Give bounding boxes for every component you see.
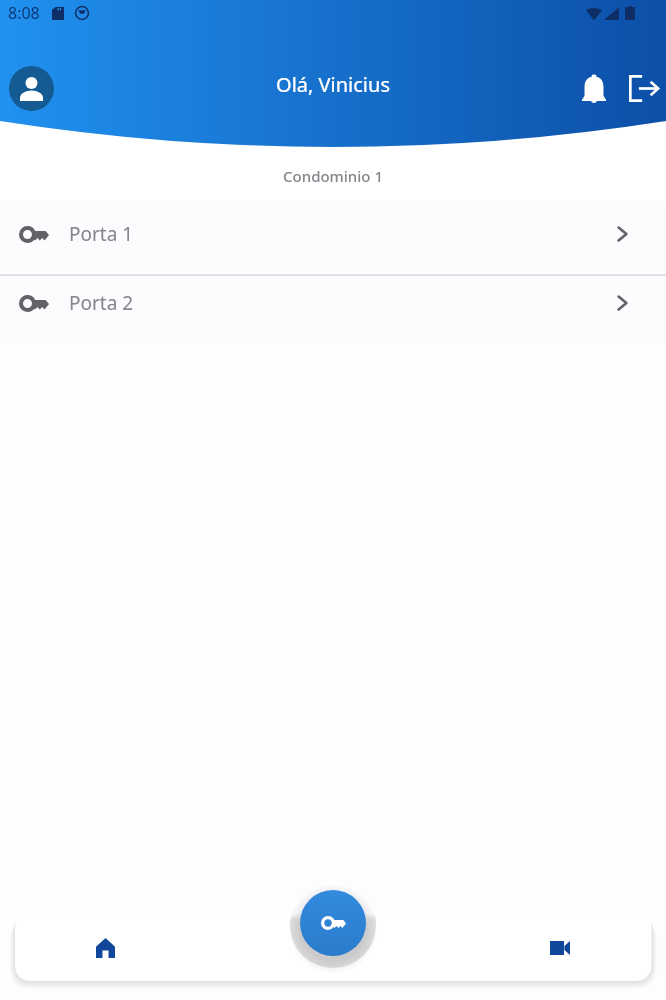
staticText: Porta 2 [69,290,134,316]
button[interactable]: Camera [540,928,580,968]
staticText: 8:08 [8,2,40,24]
button[interactable]: Porta 1 [0,207,666,274]
staticText: Porta 1 [69,221,134,247]
button[interactable]: Home [85,928,125,968]
button[interactable]: Profile [9,66,54,111]
button[interactable]: Open door [300,890,366,956]
button[interactable]: Logout [620,64,666,112]
staticText: Olá, Vinicius [0,71,666,98]
button[interactable]: Porta 2 [0,276,666,343]
button[interactable]: Notifications [570,64,618,112]
staticText: Condominio 1 [0,166,666,186]
